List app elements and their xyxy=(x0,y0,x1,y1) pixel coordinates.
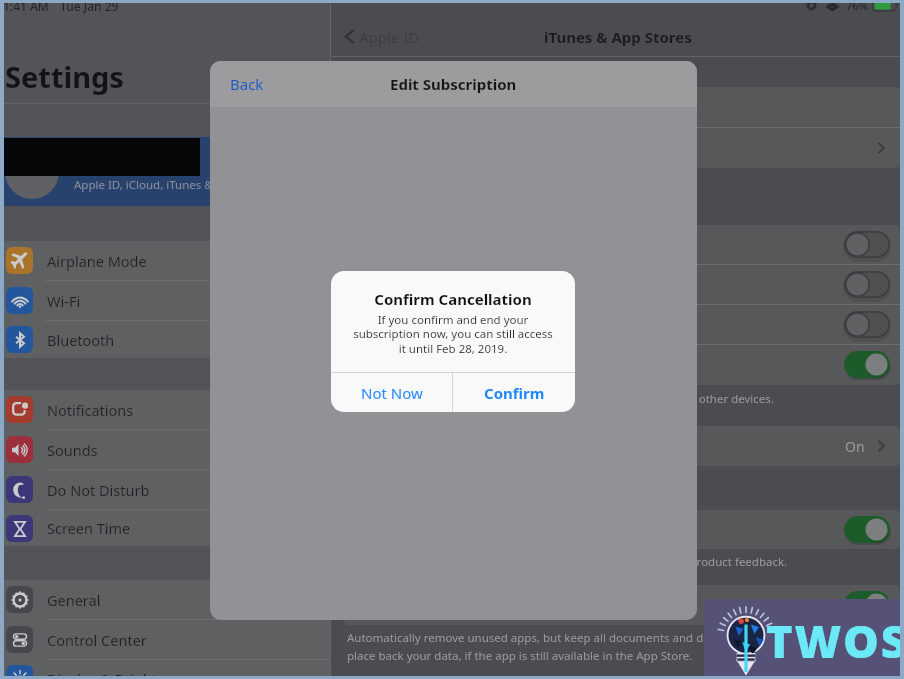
staticText: Tue Jan 29 xyxy=(60,0,119,14)
button[interactable]: Wi-Fi xyxy=(0,281,331,320)
staticText: Bluetooth xyxy=(47,330,115,350)
staticText: Notifications xyxy=(47,400,134,420)
staticText: Wi-Fi xyxy=(47,291,81,311)
button[interactable]: Confirm xyxy=(453,373,575,412)
button[interactable]: Toggle xyxy=(344,305,900,344)
staticText: Sounds xyxy=(47,440,98,460)
staticText: Display & Brightness xyxy=(47,669,188,679)
button[interactable]: Control Center xyxy=(0,620,331,659)
button[interactable]: On xyxy=(344,426,900,466)
button[interactable]: Do Not Disturb xyxy=(0,470,331,509)
staticText: Control Center xyxy=(47,630,147,650)
staticText: Settings xyxy=(5,57,124,96)
button[interactable]: Screen Time xyxy=(0,510,331,546)
button[interactable]: Toggle xyxy=(844,516,890,543)
button[interactable]: Notifications xyxy=(0,390,331,429)
staticText: 76% xyxy=(846,0,868,13)
staticText: TWOS xyxy=(766,610,904,671)
staticText: Apple ID, iCloud, iTunes & App Store xyxy=(74,177,269,193)
other: Open xyxy=(874,439,888,453)
staticText: Automatically download new purchases (in… xyxy=(347,391,774,407)
button[interactable]: Open xyxy=(344,128,900,168)
staticText: iTunes & App Stores xyxy=(544,27,692,47)
button[interactable] xyxy=(344,87,900,127)
button[interactable]: Toggle xyxy=(344,585,900,624)
button[interactable]: Apple ID, iCloud, iTunes & App Store xyxy=(0,137,331,206)
button[interactable]: Bluetooth xyxy=(0,321,331,358)
staticText: Back xyxy=(230,74,264,94)
button[interactable]: Display & Brightness xyxy=(0,660,331,679)
button[interactable]: General xyxy=(0,580,331,619)
staticText: place back your data, if the app is stil… xyxy=(347,648,693,664)
button[interactable]: Toggle xyxy=(344,265,900,304)
button[interactable]: Toggle xyxy=(844,311,890,338)
button[interactable]: Toggle xyxy=(344,510,900,549)
staticText: 1:41 AM xyxy=(3,0,49,14)
staticText: Edit Subscription xyxy=(390,74,517,94)
staticText: If you confirm and end your subscription… xyxy=(353,312,553,357)
staticText: Confirm xyxy=(484,383,545,403)
staticText: Apple ID xyxy=(359,27,420,47)
button[interactable]: Toggle xyxy=(844,351,890,378)
staticText: Allow apps to request product feedback. … xyxy=(347,554,788,570)
button[interactable]: Toggle xyxy=(844,271,890,298)
button[interactable]: Back xyxy=(210,61,284,107)
button[interactable]: Toggle xyxy=(344,225,900,264)
staticText: Automatically remove unused apps, but ke… xyxy=(347,630,797,646)
button[interactable]: Sounds xyxy=(0,430,331,469)
button[interactable]: Toggle xyxy=(344,345,900,384)
staticText: Do Not Disturb xyxy=(47,480,150,500)
staticText: Not Now xyxy=(361,383,423,403)
button[interactable]: Not Now xyxy=(331,373,452,412)
button[interactable]: Toggle xyxy=(844,591,890,618)
button[interactable]: Toggle xyxy=(844,231,890,258)
staticText: Airplane Mode xyxy=(47,251,147,271)
other: Open xyxy=(874,141,888,155)
button[interactable]: Apple ID xyxy=(331,17,430,56)
staticText: General xyxy=(47,590,101,610)
button[interactable]: Airplane Mode xyxy=(0,241,331,280)
staticText: Screen Time xyxy=(47,518,131,538)
staticText: Confirm Cancellation xyxy=(374,289,532,309)
staticText: On xyxy=(845,437,865,456)
